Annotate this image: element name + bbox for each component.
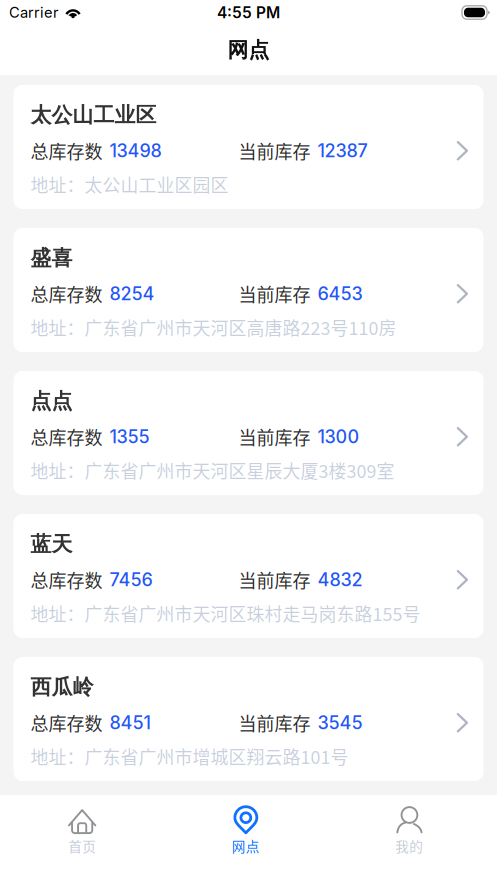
staticText: 总库存数: [30, 567, 102, 593]
staticText: 太公山工业区: [30, 102, 156, 128]
staticText: 4:55 PM: [217, 3, 280, 22]
staticText: 1300: [317, 426, 359, 448]
button[interactable]: 盛喜: [13, 228, 483, 352]
staticText: 地址：广东省广州市天河区星辰大厦3楼309室: [30, 457, 394, 483]
staticText: 3545: [317, 712, 362, 734]
staticText: 蓝天: [30, 531, 72, 557]
staticText: Carrier: [9, 4, 59, 21]
staticText: 网点: [227, 37, 269, 63]
staticText: 12387: [317, 140, 367, 162]
staticText: 总库存数: [30, 281, 102, 307]
staticText: 西瓜岭: [30, 674, 93, 700]
staticText: 我的: [395, 836, 423, 856]
staticText: 地址：广东省广州市天河区高唐路223号110房: [30, 314, 396, 340]
staticText: 当前库存: [238, 424, 310, 450]
staticText: 当前库存: [238, 281, 310, 307]
staticText: 盛喜: [30, 245, 72, 271]
button[interactable]: 首页: [1, 795, 164, 883]
staticText: 1355: [109, 426, 149, 448]
button[interactable]: 蓝天: [13, 514, 483, 638]
staticText: 网点: [232, 836, 260, 856]
staticText: 8254: [109, 283, 154, 305]
staticText: 总库存数: [30, 138, 102, 164]
staticText: 8451: [109, 712, 150, 734]
staticText: 首页: [68, 836, 96, 856]
staticText: 地址：广东省广州市增城区翔云路101号: [30, 743, 348, 769]
staticText: 7456: [109, 569, 152, 591]
staticText: 6453: [317, 283, 362, 305]
button[interactable]: 太公山工业区: [13, 85, 483, 209]
button[interactable]: 网点: [164, 795, 328, 883]
staticText: 当前库存: [238, 138, 310, 164]
button[interactable]: 我的: [328, 795, 491, 883]
button[interactable]: 点点: [13, 371, 483, 495]
staticText: 总库存数: [30, 710, 102, 736]
button[interactable]: 西瓜岭: [13, 657, 483, 781]
staticText: 总库存数: [30, 424, 102, 450]
staticText: 13498: [109, 140, 161, 162]
staticText: 4832: [317, 569, 362, 591]
staticText: 点点: [30, 388, 72, 414]
staticText: 当前库存: [238, 567, 310, 593]
staticText: 当前库存: [238, 710, 310, 736]
staticText: 地址：广东省广州市天河区珠村走马岗东路155号: [30, 600, 420, 626]
staticText: 地址：太公山工业区园区: [30, 171, 228, 197]
